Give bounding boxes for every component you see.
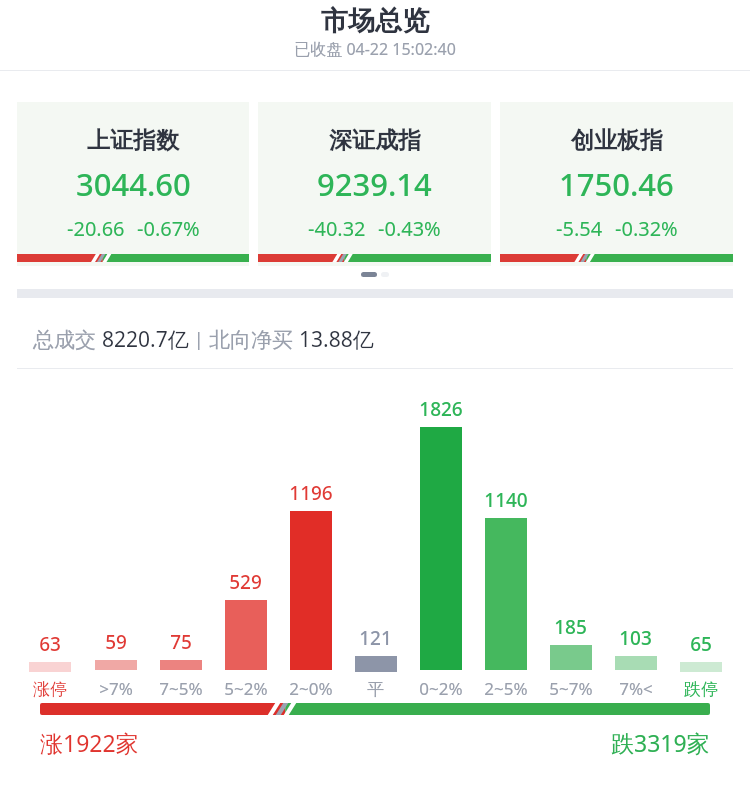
staticText: 已收盘 04-22 15:02:40	[294, 38, 456, 60]
staticText: 1140	[484, 487, 528, 513]
button[interactable]: 1826	[408, 396, 473, 700]
staticText: 涨停	[33, 679, 67, 700]
button[interactable]: 1140	[473, 487, 538, 700]
staticText: 平	[367, 679, 384, 700]
staticText: 13.88亿	[299, 325, 374, 354]
staticText: 市场总览	[321, 4, 429, 38]
staticText: 2~5%	[484, 677, 528, 700]
button[interactable]: 创业板指	[500, 102, 733, 266]
staticText: -40.32	[308, 215, 366, 242]
button[interactable]: 上证指数	[17, 102, 249, 266]
button[interactable]: 1196	[278, 480, 343, 700]
staticText: 65	[690, 631, 712, 657]
staticText: 529	[229, 569, 262, 595]
staticText: 8220.7亿	[102, 325, 189, 354]
button[interactable]: 63	[17, 631, 83, 700]
button[interactable]: 529	[213, 569, 278, 700]
staticText: 1750.46	[559, 163, 674, 205]
staticText: 0~2%	[419, 677, 463, 700]
staticText: 103	[619, 625, 652, 651]
button[interactable]: 121	[343, 625, 408, 700]
staticText: 跌停	[684, 679, 718, 700]
staticText: 2~0%	[289, 677, 333, 700]
staticText: 深证成指	[329, 126, 421, 155]
staticText: -0.43%	[378, 215, 441, 242]
staticText: 7%<	[619, 677, 653, 700]
staticText: 185	[554, 614, 587, 640]
staticText: 创业板指	[571, 126, 663, 155]
button[interactable]: 103	[603, 625, 668, 700]
staticText: -5.54	[556, 215, 603, 242]
staticText: 3044.60	[76, 163, 191, 205]
staticText: >7%	[99, 677, 133, 700]
staticText: 5~7%	[549, 677, 593, 700]
button[interactable]: 65	[668, 631, 733, 700]
staticText: 5~2%	[224, 677, 268, 700]
button[interactable]: 总成交	[33, 320, 717, 358]
staticText: -0.32%	[615, 215, 678, 242]
staticText: |	[189, 327, 209, 352]
button[interactable]: 59	[83, 629, 148, 700]
button[interactable]: 深证成指	[258, 102, 491, 266]
staticText: 59	[105, 629, 127, 655]
staticText: 121	[359, 625, 392, 651]
staticText: 9239.14	[317, 163, 432, 205]
staticText: -20.66	[67, 215, 125, 242]
staticText: 上证指数	[87, 126, 179, 155]
staticText: 总成交	[33, 325, 102, 354]
button[interactable]: 185	[538, 614, 603, 700]
staticText: 75	[170, 629, 192, 655]
staticText: 7~5%	[159, 677, 203, 700]
staticText: -0.67%	[137, 215, 200, 242]
button[interactable]: 75	[148, 629, 213, 700]
staticText: 北向净买	[209, 325, 299, 354]
button[interactable]: 涨1922家	[40, 727, 139, 758]
staticText: 1826	[419, 396, 463, 422]
button[interactable]: 跌3319家	[611, 727, 710, 758]
staticText: 1196	[289, 480, 333, 506]
staticText: 63	[39, 631, 61, 657]
